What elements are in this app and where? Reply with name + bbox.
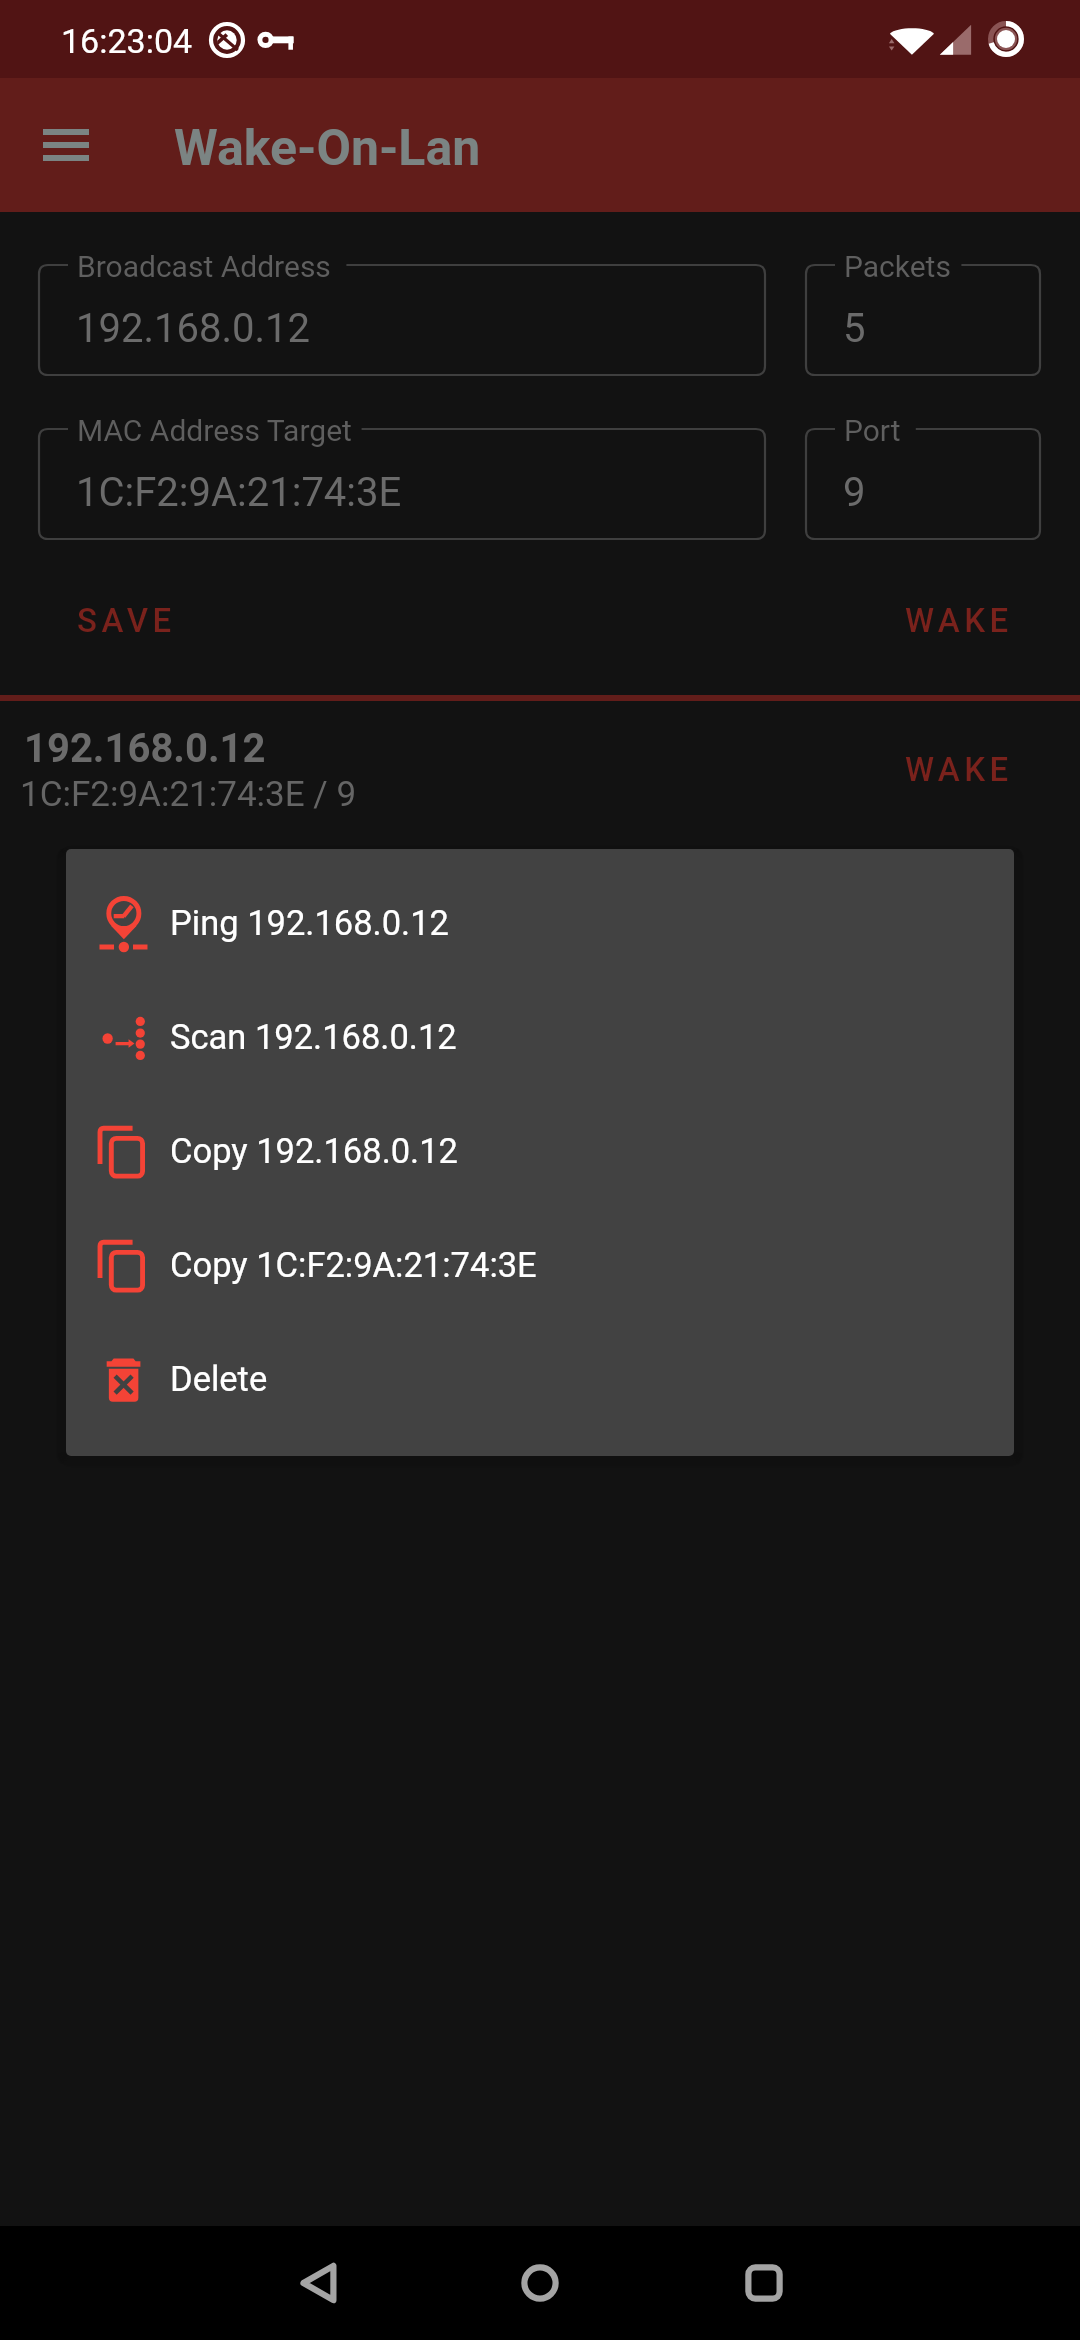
- button[interactable]: Delete: [66, 1323, 1014, 1437]
- staticText: Copy 1C:F2:9A:21:74:3E: [170, 1245, 537, 1285]
- staticText: 192.168.0.12: [76, 305, 310, 352]
- staticText: WAKE: [905, 750, 1013, 789]
- button[interactable]: WAKE: [883, 586, 1035, 654]
- button[interactable]: Recent apps: [710, 2229, 818, 2337]
- staticText: Wake-On-Lan: [174, 119, 481, 178]
- staticText: 9: [843, 469, 866, 516]
- button[interactable]: Ping 192.168.0.12: [66, 867, 1014, 981]
- staticText: 192.168.0.12: [24, 725, 266, 772]
- button[interactable]: WAKE: [883, 735, 1035, 803]
- button[interactable]: Scan 192.168.0.12: [66, 981, 1014, 1095]
- staticText: 16:23:04: [61, 21, 193, 61]
- staticText: Scan 192.168.0.12: [170, 1017, 457, 1057]
- button[interactable]: Port: [806, 429, 1040, 539]
- staticText: Port: [844, 413, 901, 448]
- staticText: SAVE: [77, 601, 176, 640]
- button[interactable]: SAVE: [58, 586, 194, 654]
- staticText: 5: [843, 305, 866, 352]
- button[interactable]: Back: [264, 2229, 372, 2337]
- button[interactable]: Copy 192.168.0.12: [66, 1095, 1014, 1209]
- staticText: Copy 192.168.0.12: [170, 1131, 458, 1171]
- staticText: Packets: [844, 249, 951, 284]
- staticText: Delete: [170, 1359, 268, 1399]
- button[interactable]: 192.168.0.12: [0, 701, 1080, 841]
- staticText: 1C:F2:9A:21:74:3E / 9: [20, 774, 357, 815]
- staticText: MAC Address Target: [77, 413, 352, 448]
- staticText: WAKE: [905, 601, 1013, 640]
- button[interactable]: Broadcast Address: [39, 265, 765, 375]
- button[interactable]: MAC Address Target: [39, 429, 765, 539]
- staticText: Broadcast Address: [77, 249, 331, 284]
- button[interactable]: Home: [486, 2229, 594, 2337]
- button[interactable]: Packets: [806, 265, 1040, 375]
- button[interactable]: Copy 1C:F2:9A:21:74:3E: [66, 1209, 1014, 1323]
- button[interactable]: Open navigation menu: [22, 101, 110, 189]
- staticText: 1C:F2:9A:21:74:3E: [76, 469, 402, 516]
- staticText: Ping 192.168.0.12: [170, 903, 449, 943]
